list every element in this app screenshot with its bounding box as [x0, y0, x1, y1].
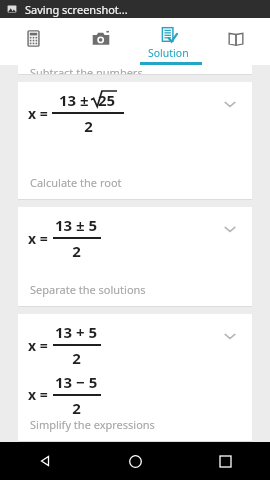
staticText: x =: [28, 229, 48, 248]
button[interactable]: x =: [18, 207, 252, 307]
button[interactable]: Expand step: [222, 221, 238, 237]
button[interactable]: Expand step: [222, 96, 238, 112]
staticText: x =: [28, 104, 48, 123]
staticText: 13 − 5: [55, 372, 98, 392]
button[interactable]: x =: [18, 82, 252, 200]
button[interactable]: Subtract the numbers: [18, 65, 252, 75]
staticText: 2: [72, 348, 81, 368]
staticText: Solution: [148, 46, 189, 60]
button[interactable]: Solution: [134, 18, 202, 65]
staticText: Simplify the expressions: [30, 417, 155, 432]
staticText: 13 ±: [59, 90, 89, 110]
staticText: x =: [28, 385, 48, 404]
button[interactable]: Glossary: [202, 18, 270, 65]
button[interactable]: Calculator: [0, 18, 67, 65]
staticText: 2: [72, 398, 81, 417]
staticText: Calculate the root: [30, 175, 122, 190]
button[interactable]: x =: [18, 314, 252, 442]
staticText: 2: [84, 116, 93, 136]
staticText: x =: [28, 336, 48, 355]
staticText: Subtract the numbers: [30, 65, 143, 75]
button[interactable]: Recents: [180, 442, 270, 480]
button[interactable]: Back: [0, 442, 90, 480]
staticText: 25: [98, 90, 116, 110]
staticText: 13 ± 5: [55, 215, 98, 235]
staticText: 2: [72, 241, 81, 261]
button[interactable]: Home: [90, 442, 180, 480]
staticText: Separate the solutions: [30, 282, 146, 297]
button[interactable]: Camera: [67, 18, 134, 65]
staticText: 13 + 5: [55, 322, 98, 342]
button[interactable]: Expand step: [222, 328, 238, 344]
staticText: Saving screenshot...: [25, 2, 128, 17]
